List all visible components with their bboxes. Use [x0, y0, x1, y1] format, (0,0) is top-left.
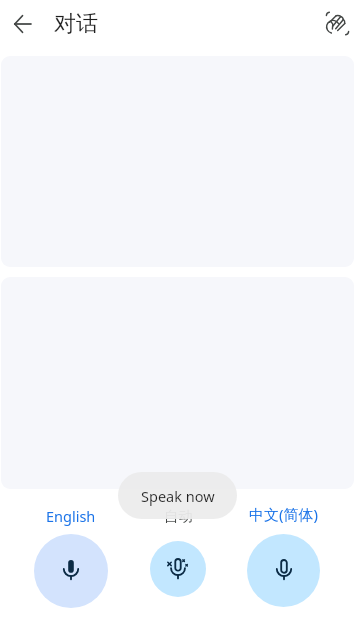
button[interactable]: Speak Chinese — [247, 534, 320, 607]
button[interactable]: 中文(简体) — [247, 503, 320, 525]
button[interactable]: Speak English — [34, 534, 108, 608]
button[interactable]: Back — [9, 10, 37, 38]
staticText: English — [46, 506, 96, 526]
button[interactable]: Wave hello — [324, 10, 351, 37]
staticText: 中文(简体) — [249, 504, 319, 524]
button[interactable]: English — [34, 505, 108, 527]
staticText: Speak now — [141, 486, 215, 506]
button[interactable]: 自动 — [150, 505, 206, 527]
button[interactable]: Auto detect language — [150, 541, 206, 597]
staticText: 对话 — [54, 10, 98, 38]
staticText: 自动 — [164, 507, 193, 525]
